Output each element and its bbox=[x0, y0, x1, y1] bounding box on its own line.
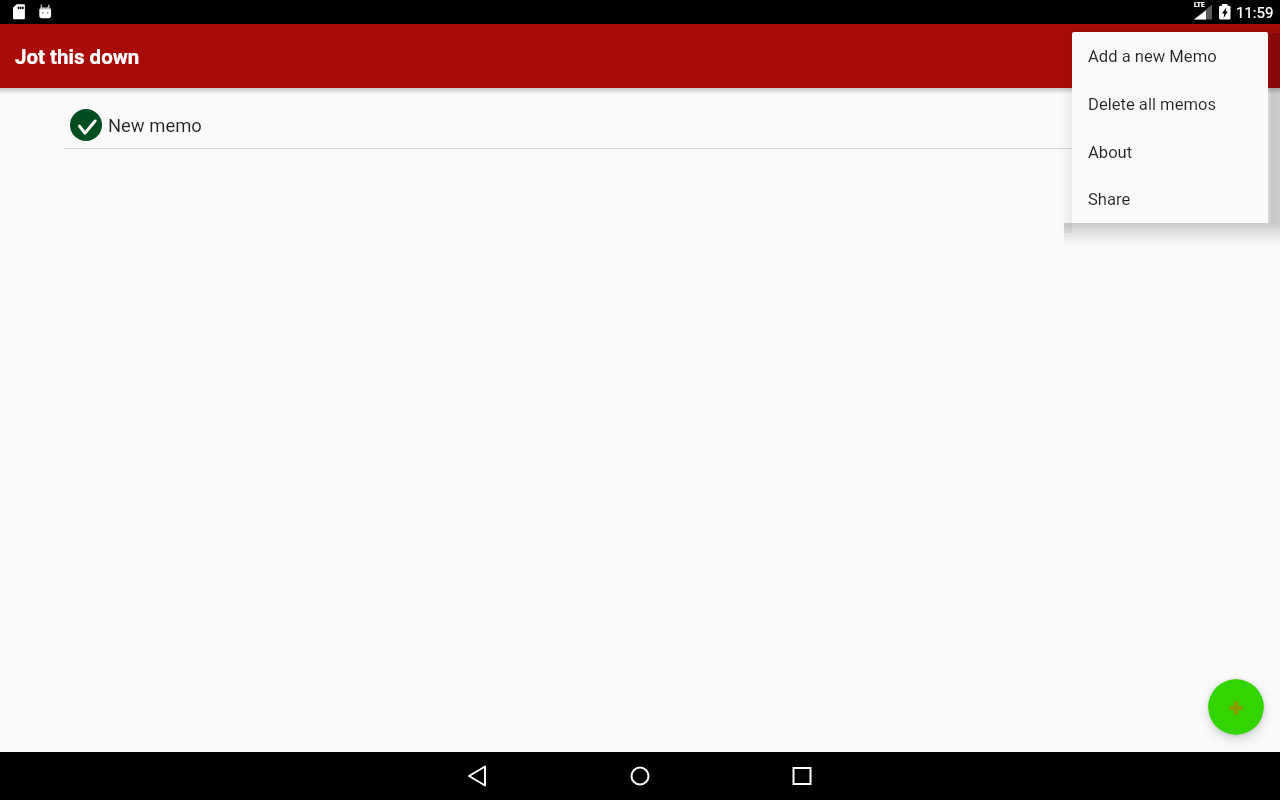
button[interactable]: Home bbox=[616, 752, 664, 800]
staticText: Share bbox=[1088, 190, 1131, 209]
staticText: LTE bbox=[1194, 1, 1205, 9]
staticText: 11:59 bbox=[1236, 4, 1274, 22]
button[interactable]: Add memo bbox=[1208, 679, 1264, 735]
button[interactable]: Share bbox=[1072, 176, 1268, 223]
staticText: About bbox=[1088, 143, 1133, 162]
button[interactable]: Delete all memos bbox=[1072, 80, 1268, 128]
button[interactable]: Add a new Memo bbox=[1072, 32, 1268, 80]
button[interactable]: Recents bbox=[778, 752, 826, 800]
button[interactable]: Back bbox=[454, 752, 502, 800]
staticText: Delete all memos bbox=[1088, 95, 1217, 114]
button[interactable]: About bbox=[1072, 128, 1268, 176]
staticText: New memo bbox=[108, 115, 202, 137]
staticText: Jot this down bbox=[15, 45, 140, 69]
staticText: Add a new Memo bbox=[1088, 47, 1217, 66]
button[interactable]: New memo bbox=[0, 101, 1280, 150]
